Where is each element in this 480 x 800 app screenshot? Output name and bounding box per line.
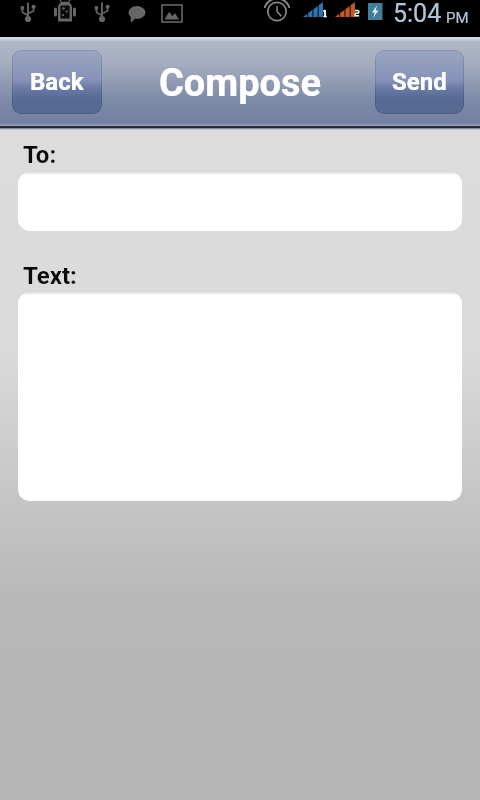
- staticText: PM: [446, 9, 469, 27]
- staticText: Back: [30, 68, 84, 96]
- button[interactable]: Send: [375, 50, 464, 114]
- staticText: Compose: [159, 61, 322, 106]
- button[interactable]: Recipient: [18, 172, 462, 231]
- button[interactable]: Back: [12, 50, 102, 114]
- staticText: Send: [392, 68, 447, 96]
- staticText: Text:: [23, 262, 77, 290]
- staticText: To:: [23, 141, 57, 169]
- staticText: 5:04: [393, 0, 442, 28]
